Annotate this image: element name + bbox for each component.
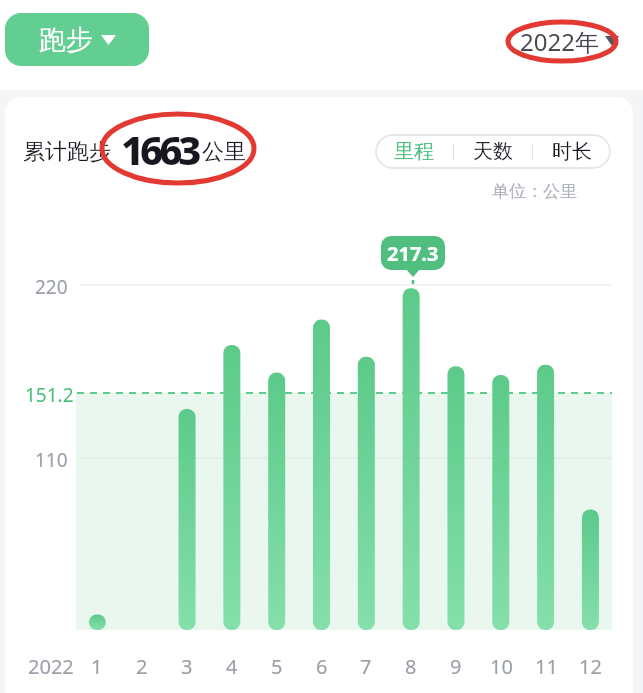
staticText: 6: [316, 653, 328, 677]
button[interactable]: 时长: [533, 134, 611, 169]
staticText: 5: [271, 653, 283, 677]
staticText: 217.3: [387, 240, 439, 267]
staticText: 110: [35, 447, 68, 469]
staticText: 里程: [394, 139, 434, 164]
staticText: 天数: [473, 139, 513, 164]
staticText: 220: [35, 274, 68, 296]
staticText: 单位：公里: [492, 181, 577, 202]
staticText: 时长: [552, 139, 592, 164]
staticText: 3: [181, 653, 193, 677]
staticText: 4: [226, 653, 238, 677]
staticText: 2022: [28, 653, 74, 677]
button[interactable]: 里程: [375, 134, 453, 169]
staticText: 11: [535, 653, 558, 677]
button[interactable]: 跑步: [5, 13, 149, 66]
staticText: 2: [136, 653, 148, 677]
staticText: 151.2: [25, 382, 74, 404]
staticText: 公里: [202, 138, 246, 166]
staticText: 1: [91, 653, 103, 677]
staticText: 10: [490, 653, 513, 677]
button[interactable]: 天数: [454, 134, 532, 169]
staticText: 7: [360, 653, 372, 677]
staticText: 1663: [121, 122, 198, 176]
staticText: 跑步: [39, 23, 93, 57]
staticText: 累计跑步: [23, 138, 111, 166]
button[interactable]: 2022年: [520, 24, 619, 58]
staticText: 9: [450, 653, 462, 677]
staticText: 12: [579, 653, 602, 677]
staticText: 2022年: [520, 25, 599, 58]
staticText: 8: [405, 653, 417, 677]
